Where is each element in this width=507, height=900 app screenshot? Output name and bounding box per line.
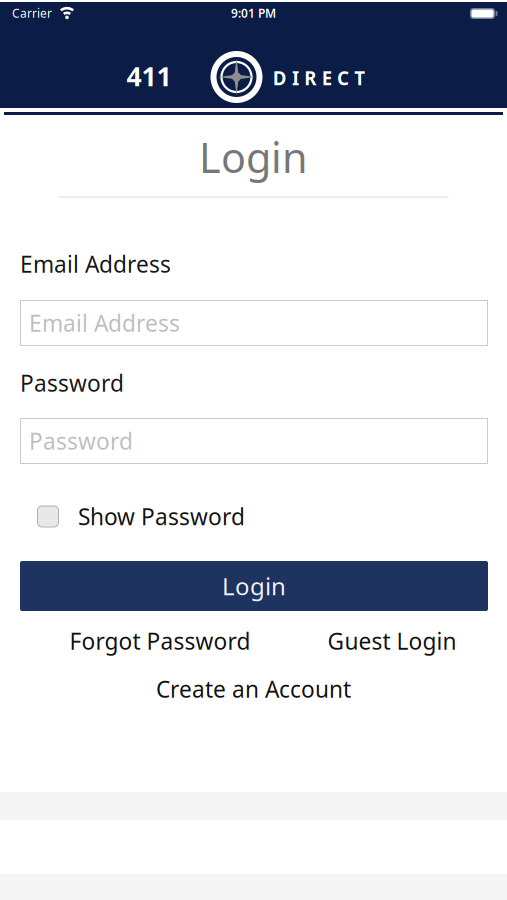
staticText: Email Address bbox=[29, 308, 180, 338]
staticText: Login bbox=[222, 570, 286, 602]
button[interactable]: Show Password bbox=[37, 501, 245, 531]
staticText: DIRECT bbox=[273, 66, 365, 90]
staticText: Carrier bbox=[12, 5, 52, 21]
staticText: Guest Login bbox=[327, 626, 456, 656]
staticText: 411 bbox=[126, 58, 171, 94]
button[interactable]: Create an Account bbox=[156, 674, 351, 704]
staticText: Show Password bbox=[78, 501, 245, 531]
staticText: Create an Account bbox=[156, 674, 351, 704]
staticText: Forgot Password bbox=[69, 626, 250, 656]
staticText: 9:01 PM bbox=[231, 5, 276, 21]
staticText: Email Address bbox=[20, 249, 171, 279]
button[interactable]: Guest Login bbox=[327, 626, 456, 656]
staticText: Password bbox=[20, 368, 124, 398]
button[interactable]: Forgot Password bbox=[69, 626, 250, 656]
button[interactable]: Login bbox=[20, 561, 488, 611]
staticText: Password bbox=[29, 426, 133, 456]
staticText: Login bbox=[199, 130, 308, 184]
